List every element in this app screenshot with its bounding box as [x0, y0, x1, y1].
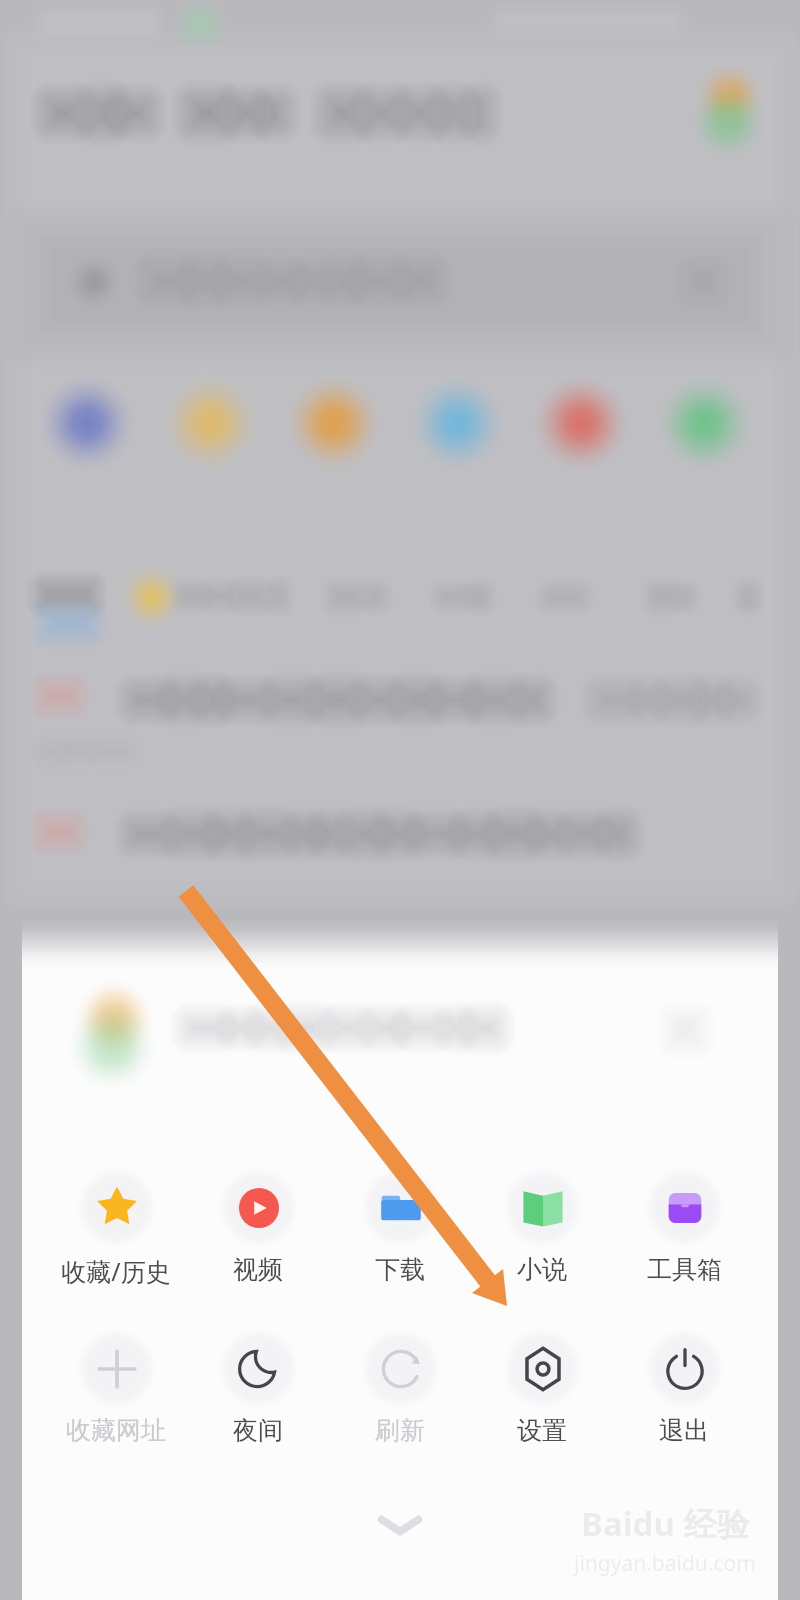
- button[interactable]: 工具箱: [613, 1169, 755, 1285]
- staticText: 刷新: [375, 1415, 425, 1446]
- staticText: 小说: [517, 1254, 567, 1285]
- staticText: 下载: [375, 1254, 425, 1285]
- staticText: 设置: [517, 1415, 567, 1446]
- button[interactable]: 退出: [613, 1330, 755, 1446]
- staticText: 退出: [659, 1415, 709, 1446]
- button[interactable]: 视频: [187, 1169, 329, 1285]
- button[interactable]: 收藏网址: [45, 1330, 187, 1446]
- button[interactable]: 刷新: [329, 1330, 471, 1446]
- button[interactable]: Collapse menu: [0, 1474, 800, 1592]
- staticText: 夜间: [233, 1415, 283, 1446]
- button[interactable]: 设置: [471, 1330, 613, 1446]
- staticText: 工具箱: [647, 1254, 722, 1285]
- staticText: jingyan.baidu.com: [574, 1549, 756, 1578]
- staticText: Baidu 经验: [581, 1501, 750, 1546]
- staticText: 视频: [233, 1254, 283, 1285]
- button[interactable]: 下载: [329, 1169, 471, 1285]
- staticText: 收藏/历史: [61, 1254, 171, 1288]
- staticText: 收藏网址: [66, 1415, 166, 1446]
- button[interactable]: 小说: [471, 1169, 613, 1285]
- button[interactable]: 夜间: [187, 1330, 329, 1446]
- button[interactable]: 收藏/历史: [45, 1169, 187, 1288]
